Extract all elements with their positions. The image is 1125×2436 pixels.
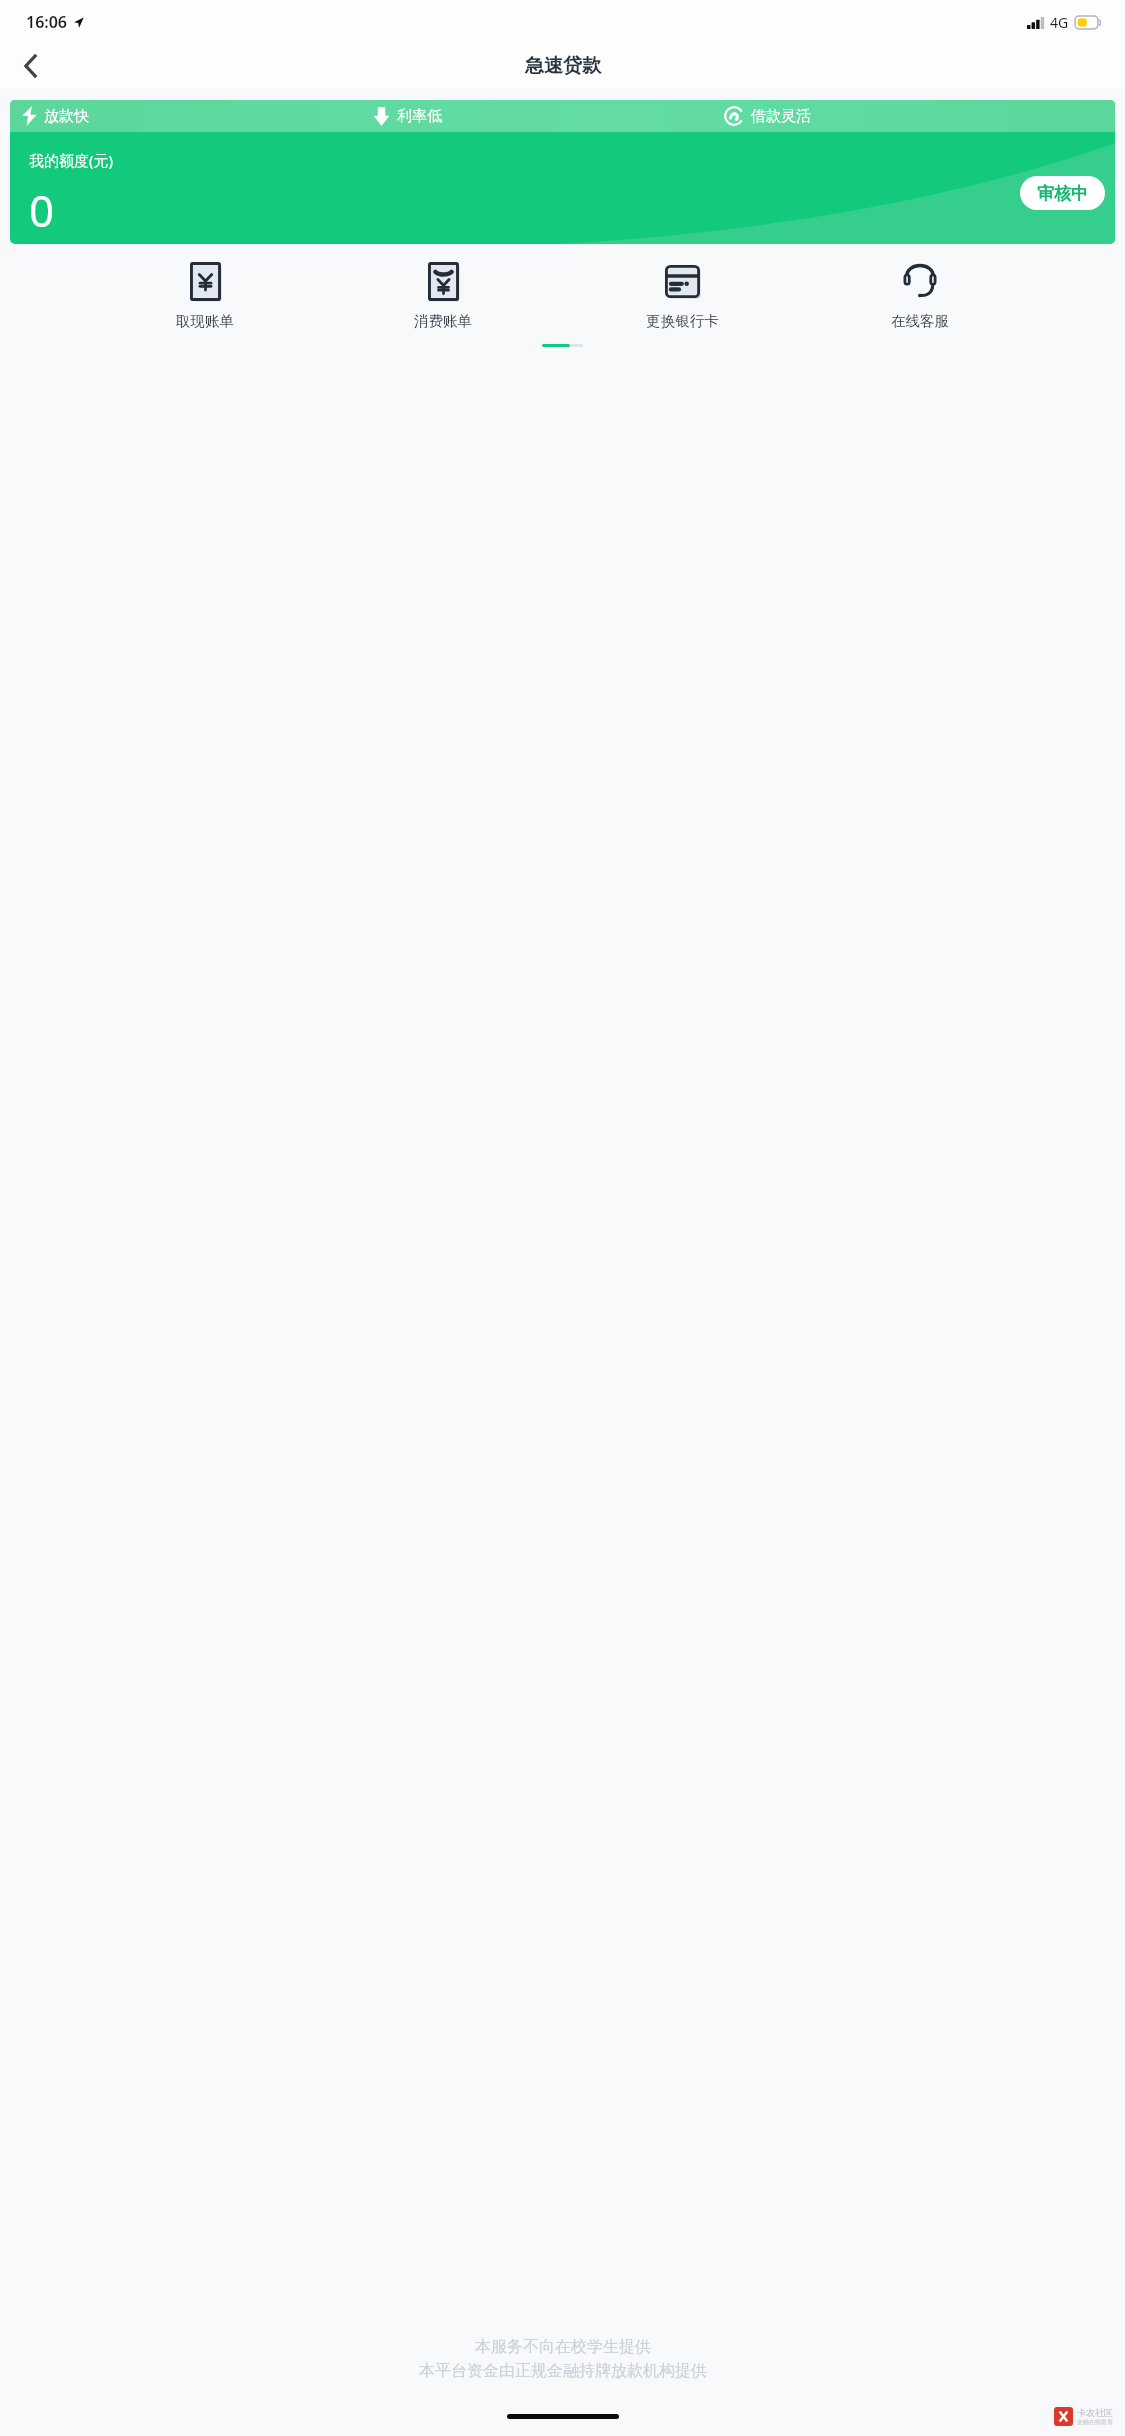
staticText: 金融在线教育 bbox=[1077, 2418, 1113, 2426]
staticText: 取现账单 bbox=[176, 312, 234, 330]
staticText: 更换银行卡 bbox=[646, 312, 719, 330]
staticText: 16:06 bbox=[26, 11, 68, 33]
staticText: 急速贷款 bbox=[525, 54, 601, 78]
button[interactable]: 审核中 bbox=[1020, 176, 1105, 210]
button[interactable]: 消费账单 bbox=[401, 254, 485, 334]
staticText: 本平台资金由正规金融持牌放款机构提供 bbox=[419, 2361, 707, 2381]
button[interactable]: Back bbox=[8, 44, 52, 88]
button[interactable]: 更换银行卡 bbox=[640, 254, 724, 334]
button[interactable]: 利率低 bbox=[373, 107, 724, 126]
button[interactable]: 放款快 bbox=[10, 100, 1115, 244]
button[interactable]: 在线客服 bbox=[878, 254, 962, 334]
staticText: 4G bbox=[1050, 13, 1069, 32]
staticText: 卡农社区 bbox=[1077, 2407, 1113, 2418]
staticText: 放款快 bbox=[44, 107, 89, 126]
staticText: 审核中 bbox=[1037, 183, 1088, 204]
button[interactable]: 放款快 bbox=[22, 106, 373, 126]
staticText: 0 bbox=[29, 180, 55, 240]
staticText: 借款灵活 bbox=[751, 107, 811, 126]
button[interactable]: 取现账单 bbox=[163, 254, 247, 334]
staticText: 我的额度(元) bbox=[29, 150, 114, 170]
staticText: 消费账单 bbox=[414, 312, 472, 330]
staticText: 本服务不向在校学生提供 bbox=[475, 2337, 651, 2357]
staticText: 在线客服 bbox=[891, 312, 949, 330]
staticText: 利率低 bbox=[397, 107, 442, 126]
button[interactable]: 借款灵活 bbox=[724, 106, 1103, 126]
